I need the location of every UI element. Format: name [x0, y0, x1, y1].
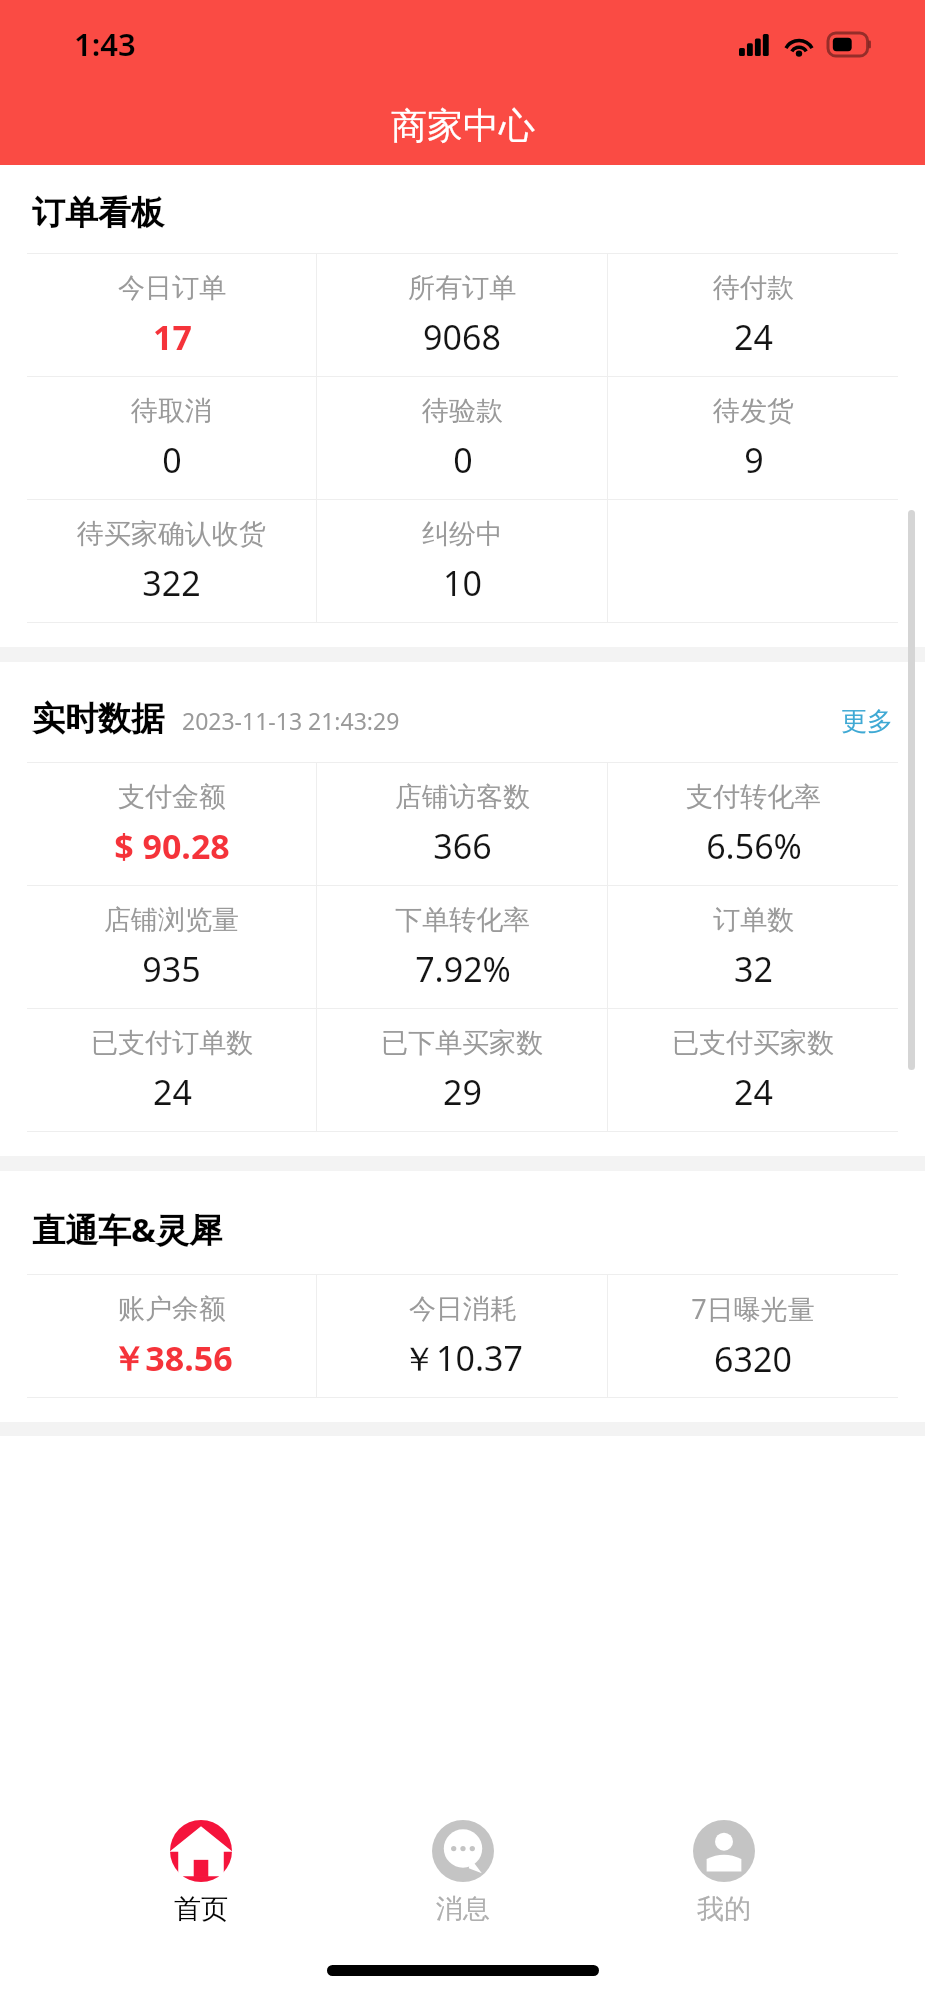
staticText: 24 — [153, 1069, 192, 1115]
staticText: 10 — [443, 560, 482, 606]
staticText: 9068 — [423, 314, 501, 360]
staticText: 1:43 — [74, 23, 136, 65]
staticText: 17 — [153, 314, 192, 360]
staticText: 下单转化率 — [395, 903, 530, 937]
staticText: 0 — [162, 437, 182, 483]
button[interactable]: 已支付订单数 — [27, 1009, 316, 1131]
staticText: 24 — [734, 1069, 773, 1115]
staticText: 6320 — [714, 1336, 792, 1382]
staticText: $ 90.28 — [114, 823, 230, 869]
staticText: 待付款 — [713, 271, 794, 305]
staticText: 9 — [744, 437, 764, 483]
button[interactable]: 待取消 — [27, 377, 316, 499]
staticText: 今日消耗 — [409, 1292, 517, 1326]
staticText: 已下单买家数 — [381, 1026, 543, 1060]
staticText: 账户余额 — [118, 1292, 226, 1326]
staticText: 今日订单 — [118, 271, 226, 305]
staticText: ￥10.37 — [402, 1335, 523, 1381]
button[interactable]: 7日曝光量 — [608, 1275, 898, 1397]
button[interactable]: 我的 — [663, 1816, 785, 1930]
button[interactable]: 待买家确认收货 — [27, 500, 316, 622]
staticText: 29 — [443, 1069, 482, 1115]
staticText: 待发货 — [713, 394, 794, 428]
staticText: 32 — [734, 946, 773, 992]
staticText: 935 — [142, 946, 201, 992]
staticText: 支付转化率 — [686, 780, 821, 814]
staticText: 直通车&灵犀 — [32, 1207, 222, 1252]
button[interactable]: 店铺浏览量 — [27, 886, 316, 1008]
staticText: 待买家确认收货 — [77, 517, 266, 551]
button[interactable]: 待验款 — [317, 377, 607, 499]
button[interactable]: 已支付买家数 — [608, 1009, 898, 1131]
staticText: 所有订单 — [408, 271, 516, 305]
staticText: 支付金额 — [118, 780, 226, 814]
button[interactable]: 纠纷中 — [317, 500, 607, 622]
staticText: 我的 — [697, 1892, 751, 1926]
button[interactable]: 待付款 — [608, 254, 898, 376]
staticText: 0 — [453, 437, 473, 483]
staticText: 待取消 — [131, 394, 212, 428]
staticText: 7日曝光量 — [691, 1290, 815, 1327]
staticText: 322 — [142, 560, 201, 606]
button[interactable]: 店铺访客数 — [317, 763, 607, 885]
button[interactable]: 支付转化率 — [608, 763, 898, 885]
button[interactable]: 已下单买家数 — [317, 1009, 607, 1131]
button[interactable]: 更多 — [841, 705, 893, 740]
staticText: 消息 — [436, 1892, 490, 1926]
staticText: 7.92% — [415, 946, 511, 992]
staticText: 店铺访客数 — [395, 780, 530, 814]
staticText: 6.56% — [706, 823, 802, 869]
button[interactable]: 今日消耗 — [317, 1275, 607, 1397]
button[interactable]: 下单转化率 — [317, 886, 607, 1008]
staticText: 实时数据 — [32, 698, 164, 740]
button[interactable]: 首页 — [140, 1816, 262, 1930]
staticText: 更多 — [841, 705, 893, 738]
button[interactable]: 所有订单 — [317, 254, 607, 376]
button[interactable]: 今日订单 — [27, 254, 316, 376]
staticText: 366 — [433, 823, 492, 869]
staticText: 首页 — [174, 1892, 228, 1926]
button[interactable]: 支付金额 — [27, 763, 316, 885]
staticText: ￥38.56 — [111, 1335, 233, 1381]
button[interactable]: 消息 — [402, 1816, 524, 1930]
staticText: 订单看板 — [32, 192, 164, 234]
button[interactable]: 账户余额 — [27, 1275, 316, 1397]
staticText: 24 — [734, 314, 773, 360]
staticText: 订单数 — [713, 903, 794, 937]
button[interactable]: 待发货 — [608, 377, 898, 499]
staticText: 商家中心 — [391, 103, 535, 148]
staticText: 店铺浏览量 — [104, 903, 239, 937]
staticText: 已支付买家数 — [672, 1026, 834, 1060]
staticText: 纠纷中 — [422, 517, 503, 551]
button[interactable]: 订单数 — [608, 886, 898, 1008]
staticText: 已支付订单数 — [91, 1026, 253, 1060]
staticText: 2023-11-13 21:43:29 — [182, 705, 400, 736]
staticText: 待验款 — [422, 394, 503, 428]
